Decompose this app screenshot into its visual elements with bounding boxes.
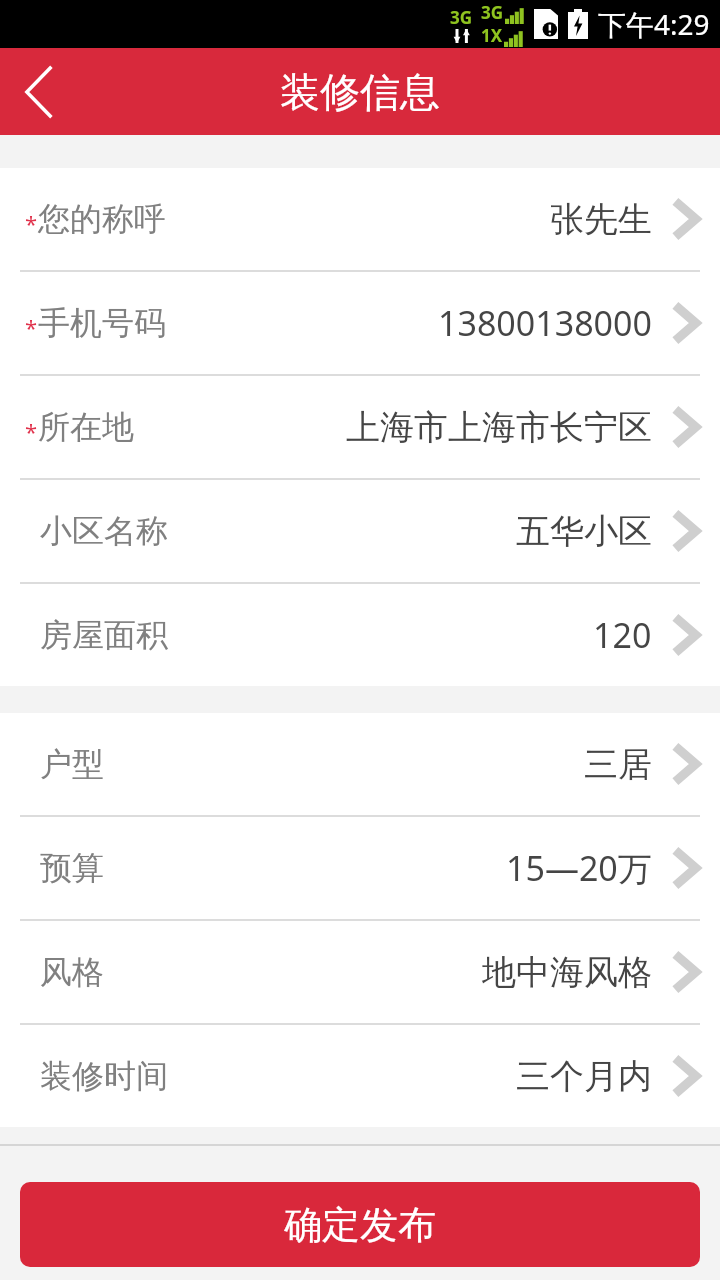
staticText: * — [25, 208, 38, 238]
button[interactable]: Back — [0, 48, 78, 135]
staticText: 手机号码 — [38, 303, 166, 343]
staticText: 确定发布 — [284, 1201, 436, 1249]
staticText: 所在地 — [38, 407, 134, 447]
staticText: 上海市上海市长宁区 — [346, 406, 652, 449]
staticText: 您的称呼 — [38, 199, 166, 239]
staticText: 装修信息 — [280, 67, 440, 117]
staticText: 预算 — [40, 848, 104, 888]
button[interactable]: * — [0, 272, 720, 374]
staticText: 120 — [593, 612, 652, 658]
button[interactable]: * — [0, 168, 720, 270]
staticText: 三居 — [584, 743, 652, 786]
staticText: 3G — [481, 1, 504, 24]
staticText: 小区名称 — [40, 511, 168, 551]
staticText: 三个月内 — [516, 1055, 652, 1098]
staticText: 下午4:29 — [598, 5, 710, 43]
button[interactable]: 小区名称 — [0, 480, 720, 582]
staticText: 15—20万 — [506, 845, 652, 891]
staticText: 装修时间 — [40, 1056, 168, 1096]
button[interactable]: 风格 — [0, 921, 720, 1023]
button[interactable]: 装修时间 — [0, 1025, 720, 1127]
button[interactable]: 户型 — [0, 713, 720, 815]
staticText: 五华小区 — [516, 510, 652, 553]
staticText: 风格 — [40, 952, 104, 992]
staticText: * — [25, 312, 38, 342]
staticText: 房屋面积 — [40, 615, 168, 655]
button[interactable]: 房屋面积 — [0, 584, 720, 686]
button[interactable]: * — [0, 376, 720, 478]
staticText: 户型 — [40, 744, 104, 784]
staticText: 张先生 — [550, 198, 652, 241]
staticText: 1X — [481, 24, 503, 47]
staticText: * — [25, 416, 38, 446]
staticText: 3G — [450, 6, 473, 29]
button[interactable]: 确定发布 — [20, 1182, 700, 1267]
staticText: 13800138000 — [438, 300, 652, 346]
button[interactable]: 预算 — [0, 817, 720, 919]
staticText: 地中海风格 — [482, 951, 652, 994]
